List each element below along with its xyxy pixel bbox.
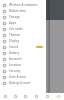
- button[interactable]: Tab: [0, 93, 10, 100]
- staticText: Display: [9, 39, 20, 43]
- button[interactable]: Wireless & networks: [0, 2, 46, 8]
- staticText: Location: [9, 63, 22, 67]
- button[interactable]: Backup & reset: [0, 80, 46, 86]
- button[interactable]: Themes: [0, 32, 46, 38]
- staticText: Mobile data: [9, 9, 26, 13]
- button[interactable]: Display: [0, 38, 46, 44]
- button[interactable]: Tab: [42, 93, 53, 100]
- button[interactable]: Tab: [20, 93, 31, 100]
- staticText: Apps: [9, 21, 17, 25]
- button[interactable]: Mobile data: [0, 8, 46, 14]
- staticText: Security: [9, 69, 21, 73]
- button[interactable]: Tab: [10, 93, 20, 100]
- staticText: Storage: [9, 15, 20, 19]
- button[interactable]: Accounts: [0, 56, 46, 62]
- button[interactable]: Storage: [0, 14, 46, 20]
- staticText: Backup & reset: [9, 81, 31, 85]
- button[interactable]: Battery: [0, 50, 46, 56]
- staticText: Wireless & networks: [9, 3, 38, 7]
- button[interactable]: Security: [0, 68, 46, 74]
- staticText: Date & time: [9, 75, 26, 79]
- staticText: Sound: [9, 45, 19, 49]
- button[interactable]: Sound: [0, 44, 46, 50]
- button[interactable]: Location: [0, 62, 46, 68]
- staticText: Battery: [9, 51, 20, 55]
- staticText: Sim cards: [9, 27, 23, 31]
- staticText: Themes: [9, 33, 21, 37]
- button[interactable]: Date & time: [0, 74, 46, 80]
- button[interactable]: Sim cards: [0, 26, 46, 32]
- button[interactable]: Apps: [0, 20, 46, 26]
- button[interactable]: Tab: [53, 93, 64, 100]
- staticText: Accounts: [9, 57, 22, 61]
- button[interactable]: Tab: [31, 93, 42, 100]
